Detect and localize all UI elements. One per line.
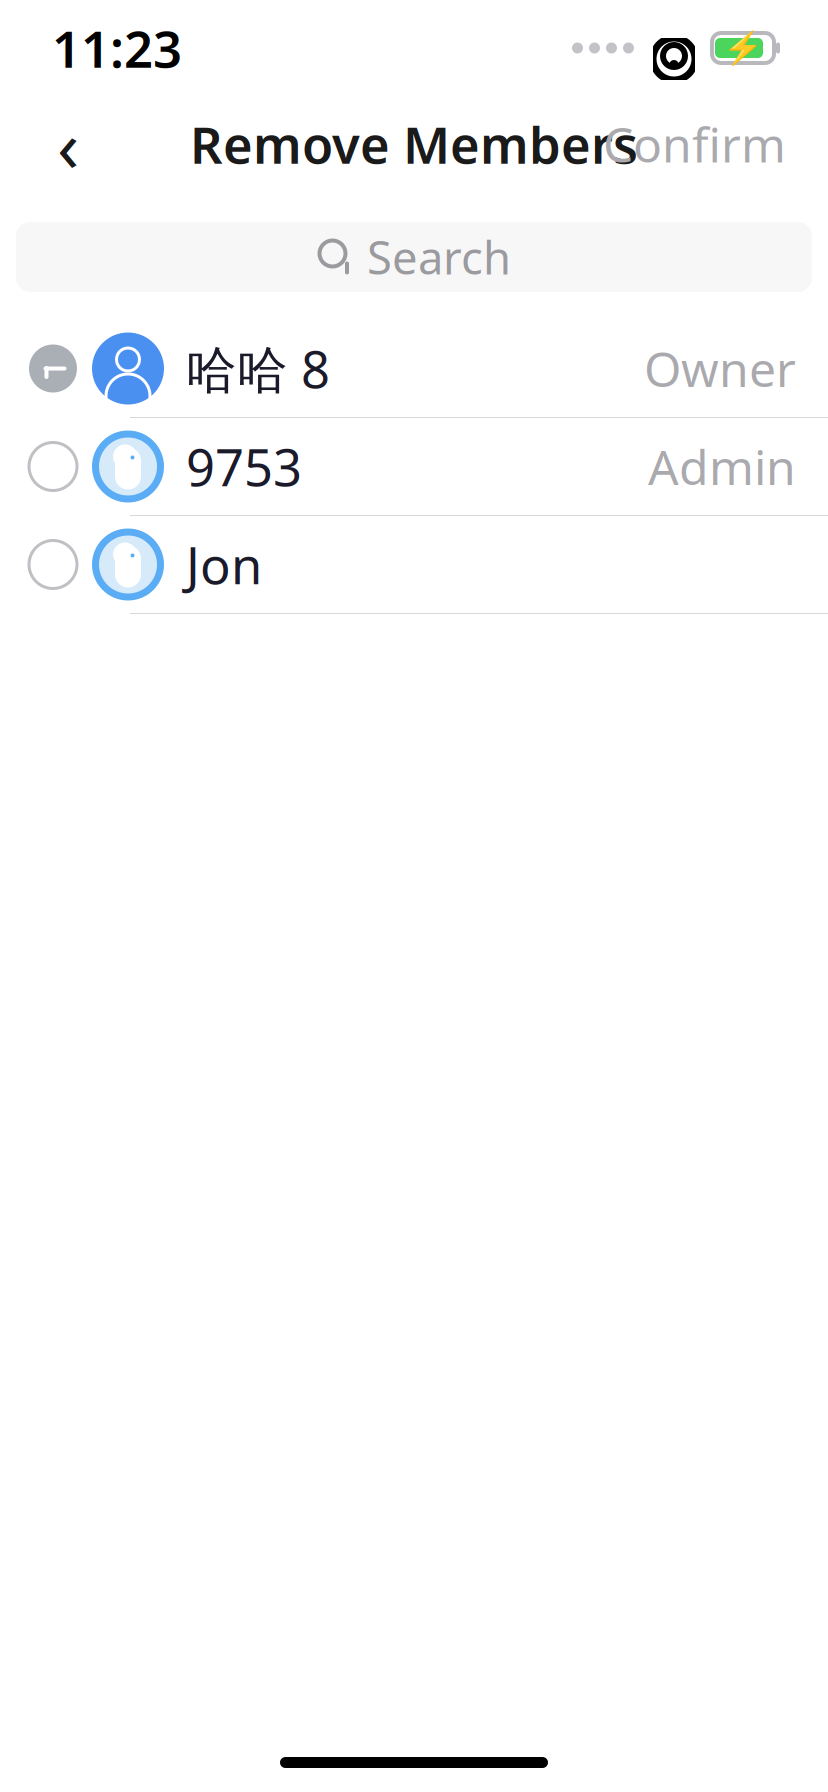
button[interactable]: Confirm <box>593 104 796 184</box>
staticText: ⚡ <box>723 30 763 66</box>
staticText: Remove Members <box>190 110 638 178</box>
staticText: Jon <box>186 531 262 598</box>
staticText: Owner <box>644 337 796 400</box>
staticText: Search <box>367 227 511 287</box>
button[interactable]: Back <box>28 104 108 184</box>
button[interactable]: 哈哈 8 <box>0 320 828 418</box>
staticText: 9753 <box>186 433 302 500</box>
button[interactable]: 9753 <box>0 418 828 516</box>
staticText: Admin <box>648 435 796 498</box>
staticText: Confirm <box>603 112 786 176</box>
staticText: 哈哈 8 <box>186 335 330 402</box>
staticText: ‹ <box>57 96 79 192</box>
button[interactable]: Search <box>16 222 812 292</box>
staticText: 11:23 <box>52 14 182 82</box>
button[interactable]: Jon <box>0 516 828 614</box>
